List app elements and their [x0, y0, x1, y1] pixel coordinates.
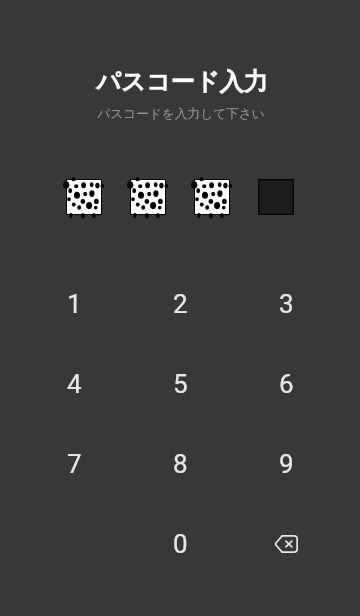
staticText: 9	[279, 449, 294, 479]
button[interactable]: 2	[127, 264, 233, 344]
staticText: 0	[173, 529, 188, 559]
button[interactable]: 6	[233, 344, 339, 424]
button[interactable]: 5	[127, 344, 233, 424]
button[interactable]: 9	[233, 424, 339, 504]
staticText: 4	[67, 369, 82, 399]
button[interactable]: 3	[233, 264, 339, 344]
button[interactable]: 7	[21, 424, 127, 504]
button[interactable]: 0	[127, 504, 233, 584]
staticText: 5	[173, 369, 188, 399]
staticText: パスコードを入力して下さい	[1, 106, 360, 122]
button[interactable]: Backspace	[233, 504, 339, 584]
staticText: 7	[67, 449, 82, 479]
button[interactable]: 8	[127, 424, 233, 504]
staticText: 6	[279, 369, 294, 399]
staticText: 1	[67, 289, 82, 319]
staticText: 2	[173, 289, 188, 319]
staticText: 3	[279, 289, 294, 319]
button[interactable]: 1	[21, 264, 127, 344]
other: Backspace	[269, 527, 303, 561]
button[interactable]: 4	[21, 344, 127, 424]
staticText: パスコード入力	[2, 67, 360, 97]
staticText: 8	[173, 449, 188, 479]
